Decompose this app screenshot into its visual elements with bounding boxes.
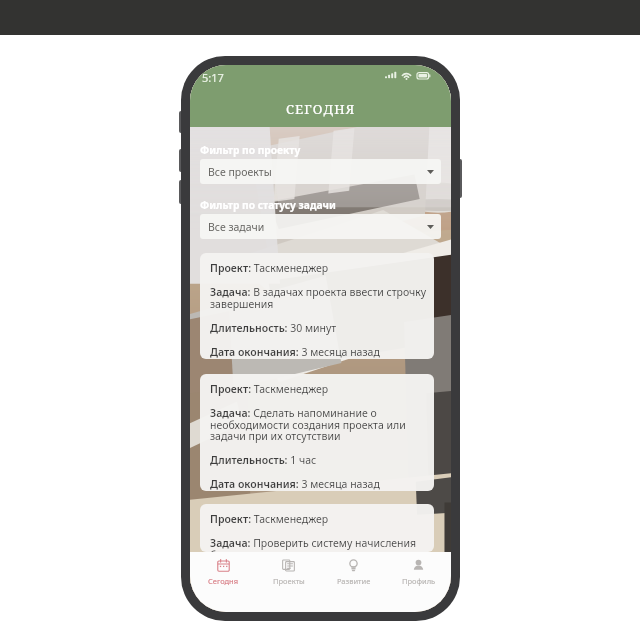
staticText: Длительность: 1 час — [210, 453, 317, 467]
button[interactable]: Сегодня — [190, 552, 256, 593]
button[interactable]: Проект: Таскменеджер — [200, 504, 434, 552]
staticText: Все задачи — [208, 220, 265, 234]
staticText: Дата окончания: 3 месяца назад — [210, 345, 380, 359]
staticText: Дата окончания: 3 месяца назад — [210, 477, 380, 491]
staticText: Проект: Таскменеджер — [210, 382, 329, 396]
staticText: СЕГОДНЯ — [286, 100, 356, 118]
staticText: 5:17 — [202, 70, 224, 83]
other: Сегодня — [217, 559, 230, 572]
staticText: Все проекты — [208, 165, 272, 179]
button[interactable]: Все задачи — [200, 214, 441, 239]
button[interactable]: Развитие — [321, 552, 386, 593]
button[interactable]: Проект: Таскменеджер — [200, 253, 434, 359]
staticText: Задача: Проверить систему начисления бал… — [210, 536, 428, 552]
staticText: Фильтр по проекту — [200, 143, 301, 157]
other: Развитие — [347, 559, 360, 572]
staticText: Задача: Сделать напоминание о необходимо… — [210, 406, 428, 443]
button[interactable]: Проект: Таскменеджер — [200, 374, 434, 491]
staticText: Проект: Таскменеджер — [210, 512, 329, 526]
button[interactable]: Профиль — [386, 552, 451, 593]
staticText: Сегодня — [208, 576, 239, 586]
other: Проекты — [282, 559, 295, 572]
staticText: Профиль — [402, 576, 436, 586]
button[interactable]: Проекты — [256, 552, 321, 593]
staticText: Проект: Таскменеджер — [210, 261, 329, 275]
staticText: Фильтр по статусу задачи — [200, 198, 336, 212]
staticText: Проекты — [273, 576, 305, 586]
staticText: Задача: В задачах проекта ввести строчку… — [210, 285, 428, 311]
other: Профиль — [412, 559, 425, 572]
staticText: Развитие — [337, 576, 371, 586]
staticText: Длительность: 30 минут — [210, 321, 337, 335]
button[interactable]: Все проекты — [200, 159, 441, 184]
